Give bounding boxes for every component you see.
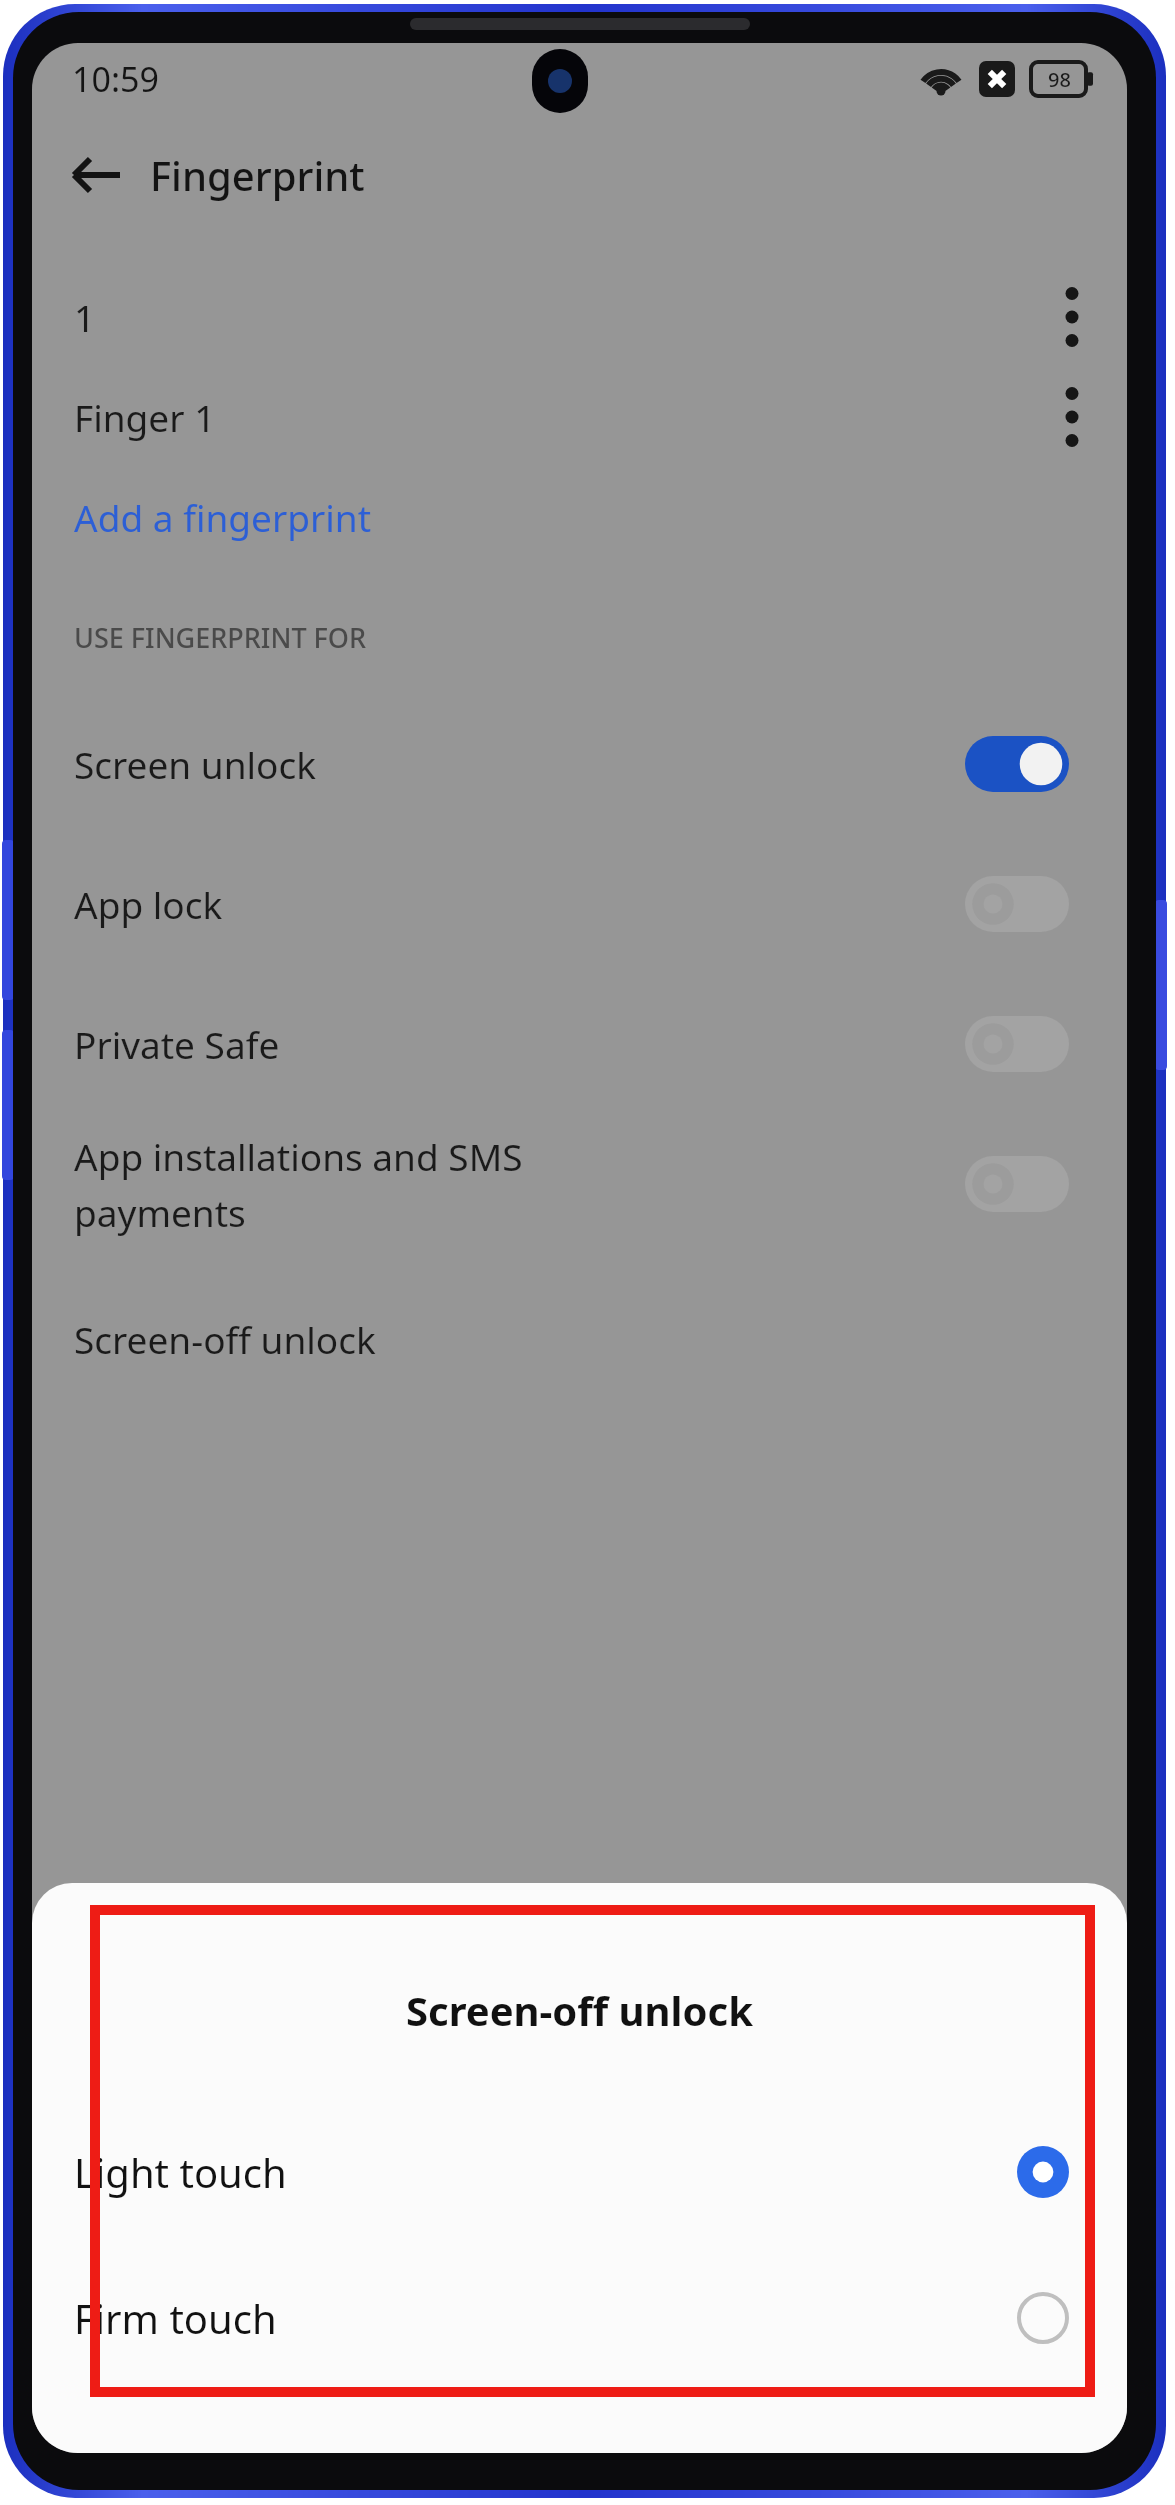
- staticText: App installations and SMS payments: [74, 1131, 523, 1238]
- staticText: 1: [74, 292, 96, 342]
- staticText: 98: [1048, 66, 1071, 93]
- button[interactable]: Finger 1: [32, 367, 1127, 467]
- staticText: Screen unlock: [74, 739, 317, 789]
- button[interactable]: More options: [1027, 272, 1117, 362]
- staticText: 10:59: [72, 56, 159, 102]
- button[interactable]: Private Safe: [32, 974, 1127, 1114]
- staticText: Finger 1: [74, 392, 216, 442]
- staticText: App lock: [74, 879, 223, 929]
- staticText: Private Safe: [74, 1019, 280, 1069]
- button[interactable]: App installations and SMS payments: [32, 1114, 1127, 1254]
- button[interactable]: Screen unlock: [32, 694, 1127, 834]
- staticText: Screen-off unlock: [74, 1314, 376, 1364]
- button[interactable]: App lock: [32, 834, 1127, 974]
- staticText: Screen-off unlock: [406, 1983, 753, 2037]
- button[interactable]: Back: [56, 135, 136, 215]
- button[interactable]: Light touch: [32, 2099, 1127, 2245]
- button[interactable]: 1: [32, 267, 1127, 367]
- staticText: Firm touch: [74, 2291, 277, 2345]
- button[interactable]: More options: [1027, 372, 1117, 462]
- staticText: Fingerprint: [150, 148, 365, 202]
- staticText: Add a fingerprint: [74, 492, 371, 542]
- staticText: Light touch: [74, 2145, 287, 2199]
- staticText: USE FINGERPRINT FOR: [74, 619, 367, 656]
- button[interactable]: Add a fingerprint: [32, 467, 1127, 567]
- button[interactable]: Firm touch: [32, 2245, 1127, 2391]
